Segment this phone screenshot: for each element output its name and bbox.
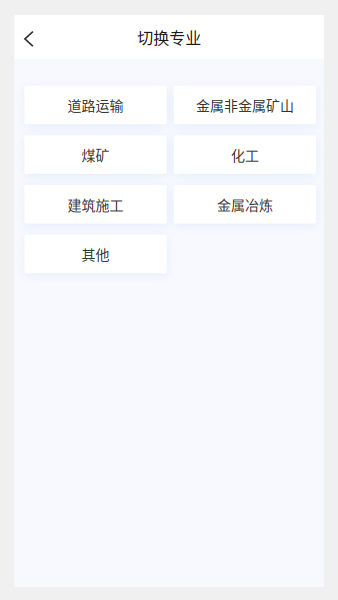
button[interactable]: 建筑施工 [24,185,167,224]
staticText: 切换专业 [137,25,201,49]
button[interactable]: 金属非金属矿山 [174,86,316,124]
staticText: 金属非金属矿山 [196,95,294,115]
button[interactable]: 煤矿 [24,135,167,174]
button[interactable]: 道路运输 [24,86,167,124]
staticText: 道路运输 [68,95,124,115]
staticText: 煤矿 [82,144,110,165]
staticText: 其他 [82,244,110,264]
button[interactable]: 其他 [24,235,167,273]
staticText: 化工 [231,144,259,165]
button[interactable]: Back [14,15,62,59]
staticText: 建筑施工 [68,194,124,214]
staticText: 金属冶炼 [217,194,273,214]
button[interactable]: 化工 [174,135,316,174]
button[interactable]: 金属冶炼 [174,185,316,224]
